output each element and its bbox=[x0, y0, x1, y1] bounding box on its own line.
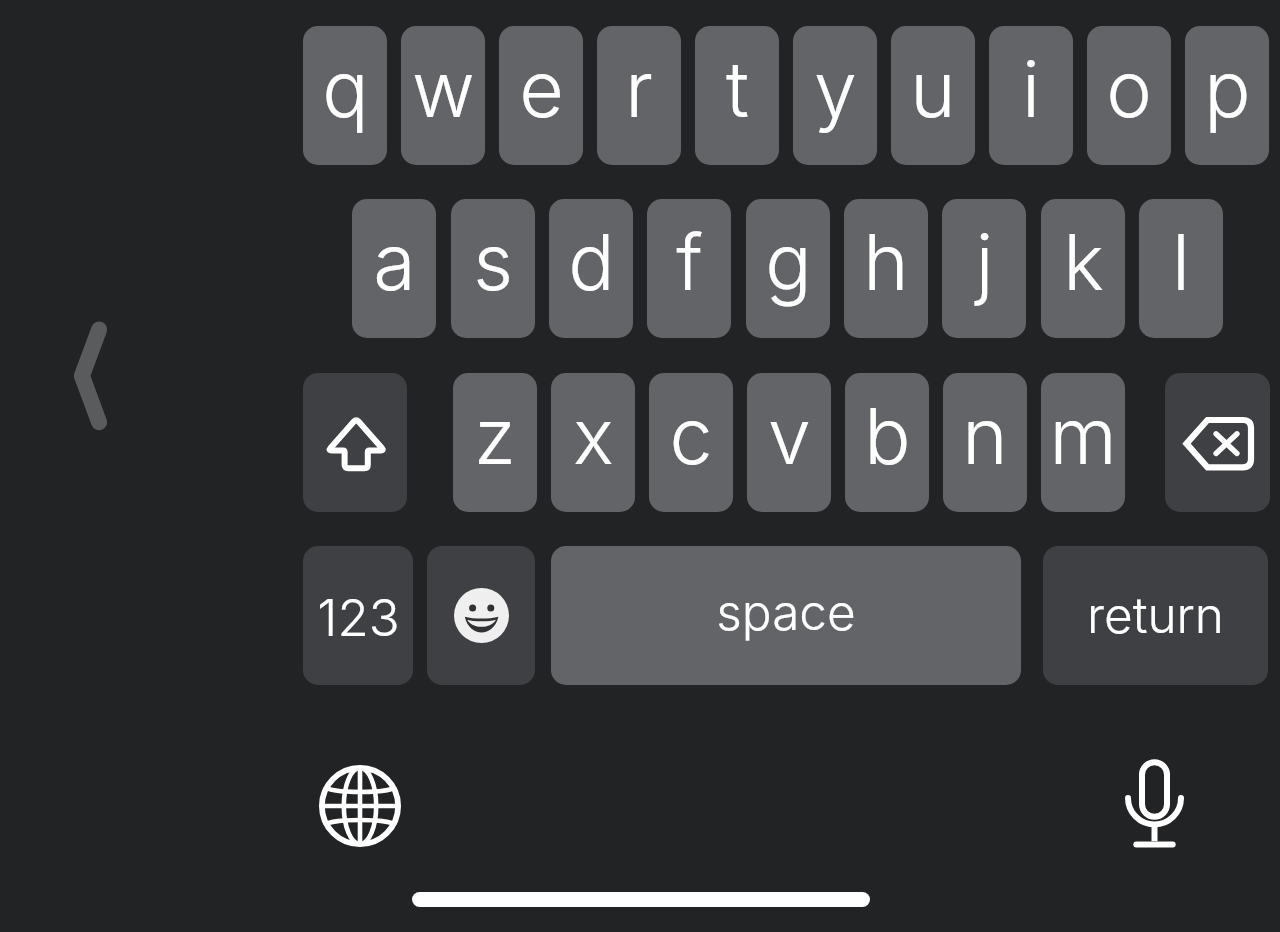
staticText: r bbox=[625, 42, 653, 135]
staticText: d bbox=[568, 215, 615, 308]
staticText: return bbox=[1087, 585, 1224, 645]
button[interactable]: q bbox=[303, 26, 387, 165]
button[interactable]: m bbox=[1041, 373, 1125, 512]
button[interactable]: i bbox=[989, 26, 1073, 165]
staticText: x bbox=[573, 389, 614, 482]
button[interactable]: Change keyboard bbox=[319, 765, 401, 847]
button[interactable]: r bbox=[597, 26, 681, 165]
staticText: c bbox=[669, 389, 713, 482]
button[interactable]: j bbox=[942, 199, 1026, 338]
staticText: z bbox=[474, 389, 516, 482]
button[interactable]: a bbox=[352, 199, 436, 338]
staticText: v bbox=[768, 389, 811, 482]
staticText: f bbox=[676, 215, 703, 308]
staticText: y bbox=[814, 42, 857, 135]
staticText: j bbox=[975, 215, 994, 308]
button[interactable]: n bbox=[943, 373, 1027, 512]
button[interactable]: c bbox=[649, 373, 733, 512]
button[interactable]: b bbox=[845, 373, 929, 512]
staticText: u bbox=[910, 42, 956, 135]
staticText: s bbox=[473, 215, 513, 308]
staticText: space bbox=[716, 582, 856, 642]
button[interactable]: space bbox=[551, 546, 1021, 685]
staticText: k bbox=[1063, 215, 1104, 308]
button[interactable]: w bbox=[401, 26, 485, 165]
staticText: 123 bbox=[317, 587, 400, 649]
button[interactable]: v bbox=[747, 373, 831, 512]
staticText: m bbox=[1049, 389, 1117, 482]
staticText: l bbox=[1172, 215, 1190, 308]
button[interactable]: Back bbox=[45, 305, 135, 445]
staticText: h bbox=[863, 215, 909, 308]
button[interactable]: o bbox=[1087, 26, 1171, 165]
staticText: i bbox=[1022, 42, 1040, 135]
button[interactable]: y bbox=[793, 26, 877, 165]
staticText: g bbox=[765, 215, 812, 308]
button[interactable]: return bbox=[1043, 546, 1268, 685]
staticText: p bbox=[1204, 42, 1251, 135]
button[interactable]: p bbox=[1185, 26, 1269, 165]
staticText: e bbox=[519, 42, 564, 135]
button[interactable]: Shift bbox=[303, 373, 407, 512]
staticText: w bbox=[412, 42, 475, 135]
staticText: b bbox=[864, 389, 911, 482]
button[interactable]: d bbox=[549, 199, 633, 338]
button[interactable]: s bbox=[451, 199, 535, 338]
button[interactable]: h bbox=[844, 199, 928, 338]
button[interactable]: l bbox=[1139, 199, 1223, 338]
staticText: t bbox=[726, 42, 749, 135]
button[interactable]: f bbox=[647, 199, 731, 338]
button[interactable]: z bbox=[453, 373, 537, 512]
button[interactable]: Backspace bbox=[1165, 373, 1270, 512]
staticText: o bbox=[1106, 42, 1152, 135]
staticText: q bbox=[322, 42, 369, 135]
button[interactable]: 123 bbox=[303, 546, 413, 685]
button[interactable]: Emoji bbox=[427, 546, 535, 685]
button[interactable]: t bbox=[695, 26, 779, 165]
staticText: n bbox=[962, 389, 1008, 482]
button[interactable]: e bbox=[499, 26, 583, 165]
button[interactable]: u bbox=[891, 26, 975, 165]
button[interactable]: k bbox=[1041, 199, 1125, 338]
button[interactable]: g bbox=[746, 199, 830, 338]
button[interactable]: x bbox=[551, 373, 635, 512]
button[interactable]: Voice input bbox=[1125, 756, 1184, 851]
staticText: a bbox=[373, 215, 416, 308]
